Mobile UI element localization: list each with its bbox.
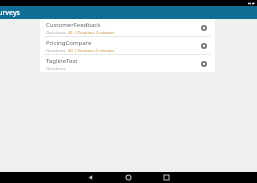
staticText: CustomerFeedback xyxy=(46,21,101,29)
staticText: Questions: xyxy=(46,66,68,71)
button[interactable]: Survey options xyxy=(198,40,210,52)
button[interactable]: TaglineTest xyxy=(40,55,215,72)
staticText: Questions: xyxy=(46,48,68,53)
staticText: urveys xyxy=(0,8,21,18)
staticText: #4 | Duration: 2 minutes xyxy=(68,48,115,53)
button[interactable]: Home xyxy=(123,172,134,183)
staticText: Questions: xyxy=(46,30,68,35)
staticText: PricingCompare xyxy=(46,39,92,47)
button[interactable]: Back xyxy=(85,172,96,183)
button[interactable]: CustomerFeedback xyxy=(40,19,215,36)
button[interactable]: Survey options xyxy=(198,58,210,70)
button[interactable]: Recents xyxy=(161,172,172,183)
button[interactable]: PricingCompare xyxy=(40,37,215,54)
button[interactable]: Survey options xyxy=(198,22,210,34)
staticText: #5 | Duration: 3 minutes xyxy=(68,30,115,35)
staticText: TaglineTest xyxy=(46,57,78,65)
